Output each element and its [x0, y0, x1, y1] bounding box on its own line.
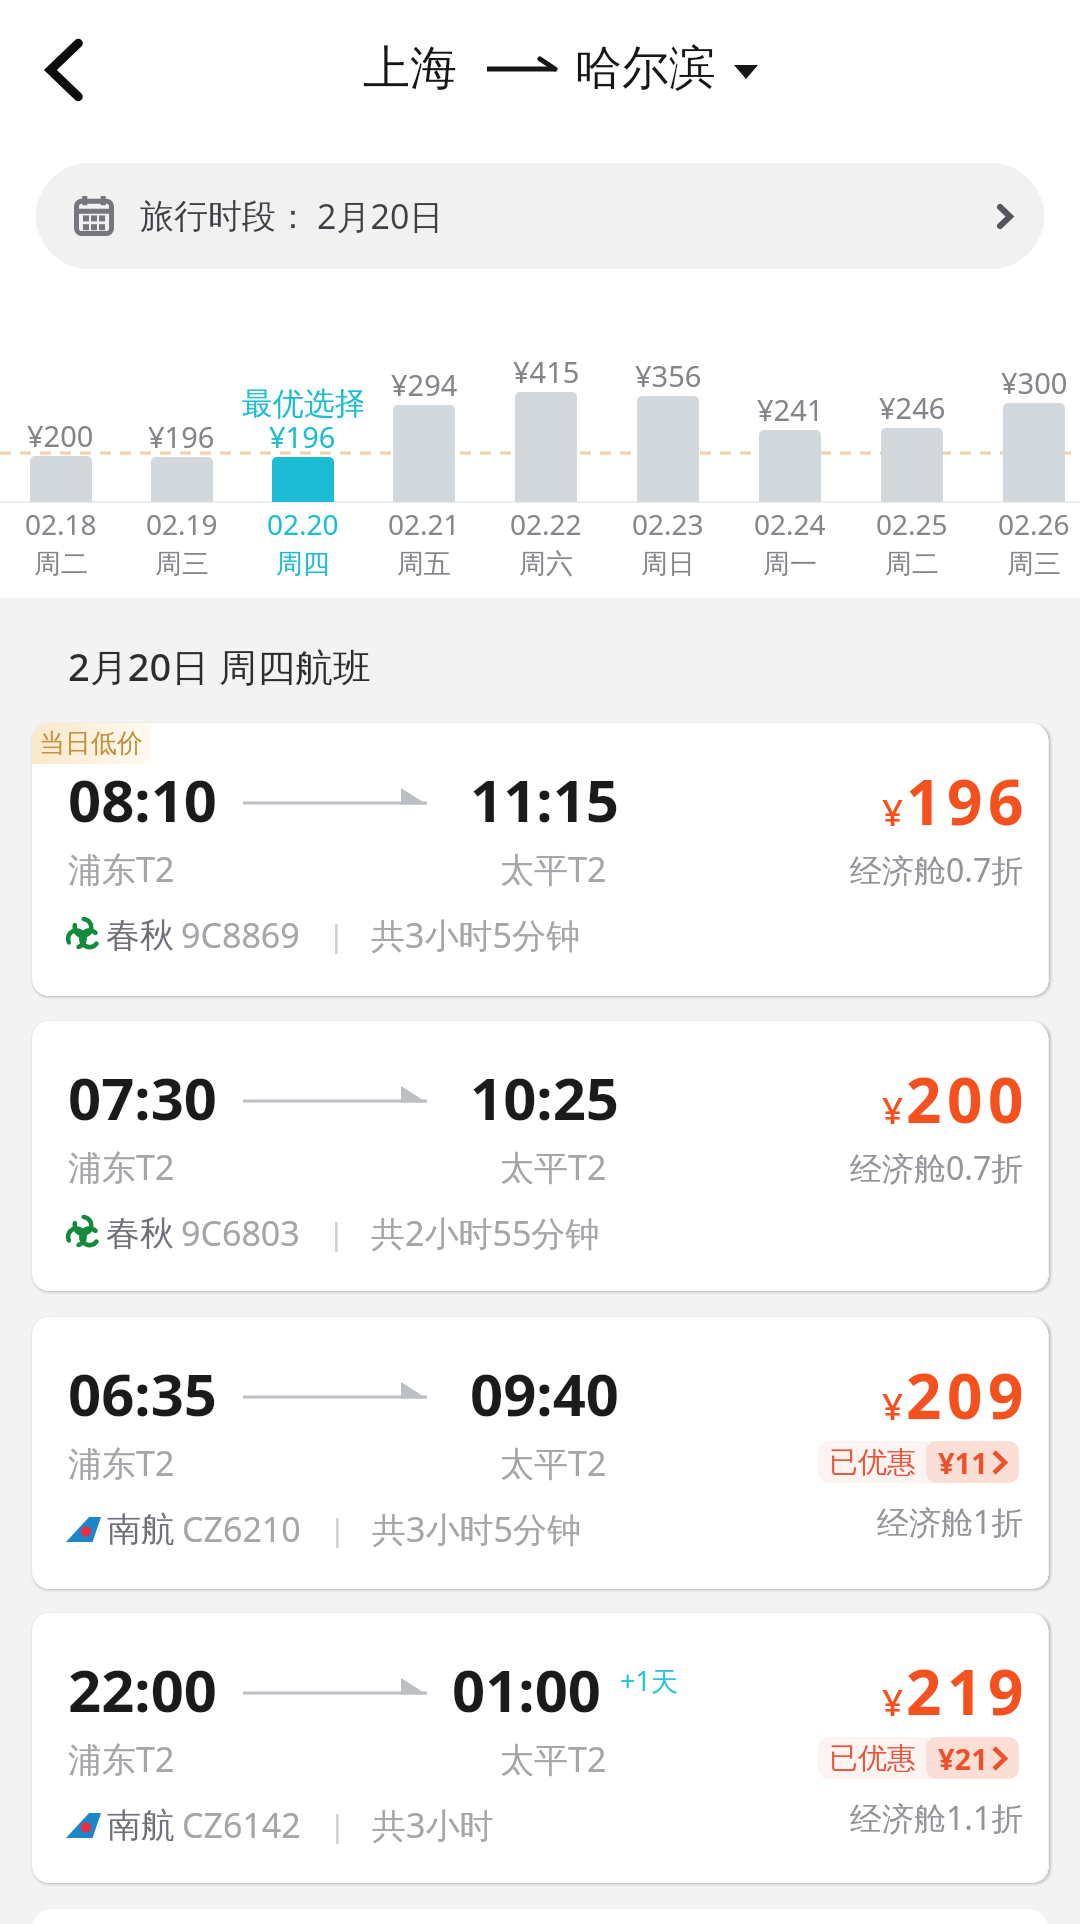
- staticText: +1天: [620, 1662, 678, 1699]
- staticText: CZ6210: [182, 1506, 301, 1552]
- staticText: ¥196: [148, 417, 215, 456]
- staticText: 太平T2: [500, 1144, 607, 1190]
- staticText: 02.26: [998, 505, 1070, 543]
- staticText: 最优选择: [242, 384, 363, 423]
- staticText: ¥11: [938, 1443, 988, 1482]
- staticText: ¥300: [1001, 363, 1068, 402]
- staticText: 浦东T2: [68, 1144, 175, 1190]
- staticText: 周日: [641, 547, 695, 581]
- staticText: 旅行时段：: [140, 195, 310, 238]
- staticText: 周三: [1007, 547, 1061, 581]
- staticText: ¥356: [635, 356, 702, 395]
- staticText: 09:40: [470, 1354, 620, 1433]
- staticText: 春秋: [106, 914, 174, 957]
- staticText: 周二: [34, 547, 88, 581]
- staticText: ¥: [882, 1084, 904, 1134]
- staticText: 9C8869: [181, 912, 300, 958]
- staticText: 01:00: [452, 1650, 602, 1729]
- staticText: 2月20日 周四航班: [68, 640, 372, 692]
- staticText: 2月20日: [317, 193, 444, 239]
- button[interactable]: [272, 457, 334, 502]
- staticText: 02.19: [146, 505, 218, 543]
- staticText: 当日低价: [39, 727, 143, 760]
- staticText: 周四: [276, 547, 330, 581]
- staticText: 周三: [155, 547, 209, 581]
- staticText: ¥: [882, 1380, 904, 1430]
- staticText: ¥241: [757, 390, 824, 429]
- staticText: 浦东T2: [68, 1736, 175, 1782]
- staticText: 哈尔滨: [575, 39, 716, 98]
- staticText: 196: [906, 759, 1029, 843]
- staticText: 200: [906, 1057, 1029, 1141]
- staticText: |: [328, 915, 345, 956]
- staticText: 209: [906, 1353, 1029, 1437]
- button[interactable]: 当日低价: [32, 723, 1048, 996]
- staticText: ¥200: [27, 416, 94, 455]
- staticText: |: [329, 1805, 346, 1846]
- button[interactable]: 上海: [363, 39, 758, 98]
- staticText: CZ6142: [182, 1802, 301, 1848]
- staticText: 太平T2: [500, 846, 607, 892]
- staticText: 10:25: [470, 1058, 620, 1137]
- staticText: 太平T2: [500, 1440, 607, 1486]
- staticText: 共2小时55分钟: [371, 1210, 600, 1256]
- button[interactable]: 已优惠: [818, 1737, 1019, 1779]
- staticText: 已优惠: [829, 1444, 916, 1481]
- staticText: 219: [906, 1649, 1029, 1733]
- staticText: 太平T2: [500, 1736, 607, 1782]
- staticText: 11:15: [470, 760, 620, 839]
- staticText: 周六: [519, 547, 573, 581]
- staticText: ¥21: [938, 1739, 988, 1778]
- button[interactable]: 07:30: [32, 1021, 1048, 1291]
- staticText: 02.24: [754, 505, 826, 543]
- button[interactable]: 06:35: [32, 1317, 1048, 1589]
- staticText: 共3小时: [372, 1802, 494, 1848]
- staticText: 春秋: [106, 1212, 174, 1255]
- staticText: 共3小时5分钟: [371, 912, 580, 958]
- staticText: 02.18: [25, 505, 97, 543]
- staticText: 经济舱1折: [877, 1500, 1024, 1544]
- staticText: 经济舱0.7折: [850, 848, 1024, 892]
- staticText: 02.25: [876, 505, 948, 543]
- staticText: ¥: [882, 1676, 904, 1726]
- button[interactable]: 22:00: [32, 1613, 1048, 1883]
- staticText: 南航: [107, 1508, 175, 1551]
- staticText: 南航: [107, 1804, 175, 1847]
- staticText: 02.22: [510, 505, 582, 543]
- button[interactable]: 旅行时段：: [36, 163, 1044, 269]
- staticText: |: [328, 1213, 345, 1254]
- staticText: 浦东T2: [68, 1440, 175, 1486]
- staticText: 周一: [763, 547, 817, 581]
- staticText: 经济舱0.7折: [850, 1146, 1024, 1190]
- staticText: 周五: [397, 547, 451, 581]
- staticText: 共3小时5分钟: [372, 1506, 581, 1552]
- staticText: 02.21: [388, 505, 460, 543]
- staticText: ¥: [882, 786, 904, 836]
- staticText: |: [329, 1509, 346, 1550]
- staticText: 已优惠: [829, 1740, 916, 1777]
- staticText: 9C6803: [181, 1210, 300, 1256]
- staticText: 周二: [885, 547, 939, 581]
- staticText: ¥294: [391, 365, 458, 404]
- staticText: ¥246: [879, 388, 946, 427]
- staticText: 上海: [363, 39, 457, 98]
- button[interactable]: Back: [16, 22, 112, 118]
- staticText: 08:10: [68, 760, 218, 839]
- staticText: 经济舱1.1折: [850, 1796, 1024, 1840]
- staticText: ¥415: [513, 352, 580, 391]
- staticText: 02.20: [267, 505, 339, 543]
- staticText: 22:00: [68, 1650, 218, 1729]
- staticText: 07:30: [68, 1058, 218, 1137]
- staticText: 浦东T2: [68, 846, 175, 892]
- staticText: 06:35: [68, 1354, 218, 1433]
- button[interactable]: 已优惠: [818, 1441, 1019, 1483]
